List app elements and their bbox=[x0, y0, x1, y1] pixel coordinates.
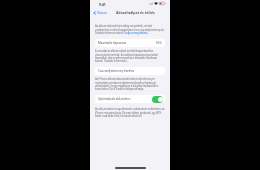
staticText: Az akkumulatorok kemiailag oregednek, em… bbox=[95, 24, 165, 34]
staticText: Vissza bbox=[97, 10, 107, 15]
staticText: Maximalis kapacitas bbox=[98, 41, 127, 45]
staticText: Optimalizalt akkutoltes bbox=[98, 97, 131, 101]
button[interactable]: Vissza bbox=[93, 10, 107, 15]
staticText: Ez az adat az akkumulator eredeti kapaci… bbox=[95, 49, 165, 62]
staticText: 86% bbox=[156, 41, 162, 45]
staticText: 9:41 bbox=[99, 2, 106, 7]
staticText: Az iPhone akkumulatoranak hatter-teljesi… bbox=[95, 77, 165, 90]
button[interactable]: Maximalis kapacitas bbox=[98, 39, 162, 47]
staticText: Az akkumulator oregedesenek csokkentese … bbox=[95, 107, 165, 117]
staticText: Aktualizálpat és töltés bbox=[116, 10, 155, 15]
staticText: Csucsteljesitmeny kezeles bbox=[98, 69, 135, 73]
button[interactable]: Csucsteljesitmeny kezeles bbox=[98, 67, 162, 75]
button[interactable]: Optimalizalt akkutoltes kapcsolo bbox=[152, 96, 163, 103]
button[interactable]: Optimalizalt akkutoltes bbox=[98, 95, 163, 103]
